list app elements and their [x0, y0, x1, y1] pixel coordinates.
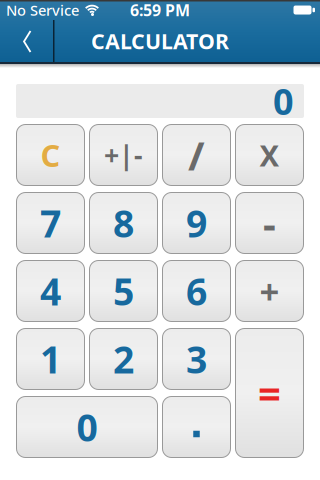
staticText: 9 — [186, 198, 207, 248]
button[interactable]: / — [162, 124, 231, 186]
button[interactable]: 9 — [162, 192, 231, 254]
button[interactable]: +|- — [89, 124, 158, 186]
staticText: 8 — [113, 198, 134, 248]
button[interactable] — [162, 396, 231, 458]
button[interactable]: 4 — [16, 260, 85, 322]
staticText: 2 — [113, 334, 134, 384]
button[interactable]: 7 — [16, 192, 85, 254]
button[interactable]: 6 — [162, 260, 231, 322]
staticText: 6:59 PM — [130, 0, 190, 21]
staticText: X — [259, 135, 279, 174]
button[interactable]: - — [235, 192, 304, 254]
staticText: 0 — [273, 77, 294, 125]
button[interactable]: = — [235, 328, 304, 458]
staticText: No Service — [6, 0, 79, 20]
staticText: 5 — [113, 266, 134, 316]
button[interactable]: 5 — [89, 260, 158, 322]
staticText: 7 — [40, 198, 61, 248]
button[interactable]: + — [235, 260, 304, 322]
button[interactable]: 3 — [162, 328, 231, 390]
button[interactable] — [0, 20, 53, 62]
button[interactable]: 0 — [16, 396, 158, 458]
button[interactable]: 8 — [89, 192, 158, 254]
staticText: / — [188, 128, 205, 181]
button[interactable]: 2 — [89, 328, 158, 390]
button[interactable]: X — [235, 124, 304, 186]
staticText: CALCULATOR — [91, 27, 229, 55]
button[interactable]: 1 — [16, 328, 85, 390]
staticText: + — [259, 268, 279, 314]
staticText: 4 — [40, 266, 61, 316]
staticText: C — [40, 135, 60, 175]
staticText: 0 — [76, 402, 97, 452]
staticText: +|- — [104, 137, 143, 173]
button[interactable]: C — [16, 124, 85, 186]
staticText: - — [263, 196, 276, 249]
staticText: 3 — [186, 334, 207, 384]
staticText: 6 — [186, 266, 207, 316]
staticText: 1 — [40, 334, 61, 384]
staticText: = — [258, 366, 281, 419]
